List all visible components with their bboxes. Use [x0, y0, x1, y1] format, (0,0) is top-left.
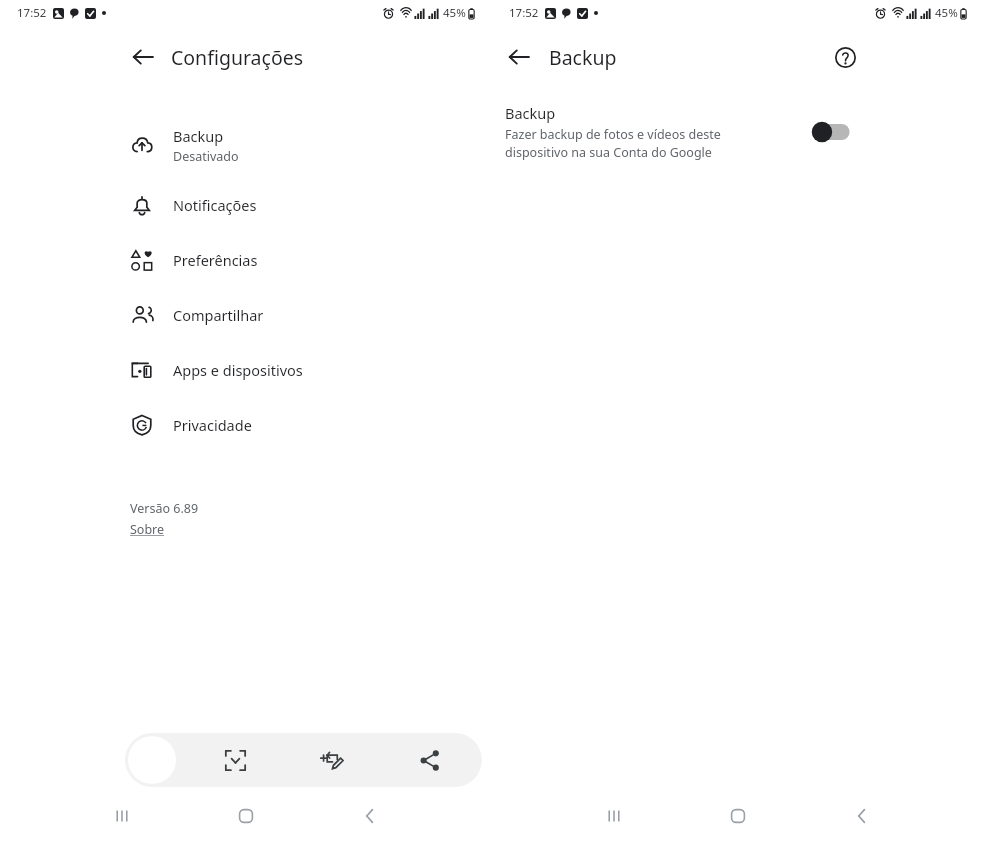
button[interactable]: Ativar backup [810, 116, 856, 148]
button[interactable]: Recentes [60, 790, 184, 842]
button[interactable]: Lens [219, 744, 251, 776]
button[interactable]: Preferências [0, 241, 492, 279]
staticText: Configurações [171, 44, 304, 71]
staticText: Fazer backup de fotos e vídeos deste [505, 126, 721, 143]
staticText: Backup [549, 44, 617, 71]
button[interactable]: Backup [492, 100, 984, 164]
button[interactable]: Ajuda [826, 38, 864, 76]
staticText: Desativado [173, 148, 239, 165]
button[interactable]: Voltar [308, 790, 432, 842]
button[interactable]: Notificações [0, 186, 492, 224]
staticText: 17:52 [509, 5, 539, 21]
button[interactable]: Recentes [552, 790, 676, 842]
button[interactable]: Voltar [124, 38, 162, 76]
button[interactable]: Sobre [130, 521, 165, 538]
staticText: Sobre [130, 521, 165, 538]
button[interactable]: Voltar [800, 790, 924, 842]
staticText: dispositivo na sua Conta do Google [505, 144, 712, 161]
staticText: 17:52 [17, 5, 47, 21]
staticText: 45% [443, 5, 466, 21]
button[interactable]: Compartilhar [0, 296, 492, 334]
staticText: Privacidade [173, 415, 252, 435]
button[interactable]: Conta [128, 736, 176, 784]
button[interactable]: Compartilhar [413, 744, 445, 776]
button[interactable]: Editar [316, 744, 348, 776]
button[interactable]: Apps e dispositivos [0, 351, 492, 389]
staticText: Compartilhar [173, 305, 264, 325]
staticText: Preferências [173, 250, 258, 270]
button[interactable]: Voltar [500, 38, 538, 76]
staticText: Backup [173, 126, 224, 146]
button[interactable]: Início [676, 790, 800, 842]
staticText: Apps e dispositivos [173, 360, 303, 380]
staticText: Backup [505, 103, 556, 123]
staticText: Notificações [173, 195, 257, 215]
button[interactable]: Backup [0, 122, 492, 168]
button[interactable]: Privacidade [0, 406, 492, 444]
staticText: 45% [935, 5, 958, 21]
button[interactable]: Início [184, 790, 308, 842]
staticText: Versão 6.89 [130, 500, 199, 517]
